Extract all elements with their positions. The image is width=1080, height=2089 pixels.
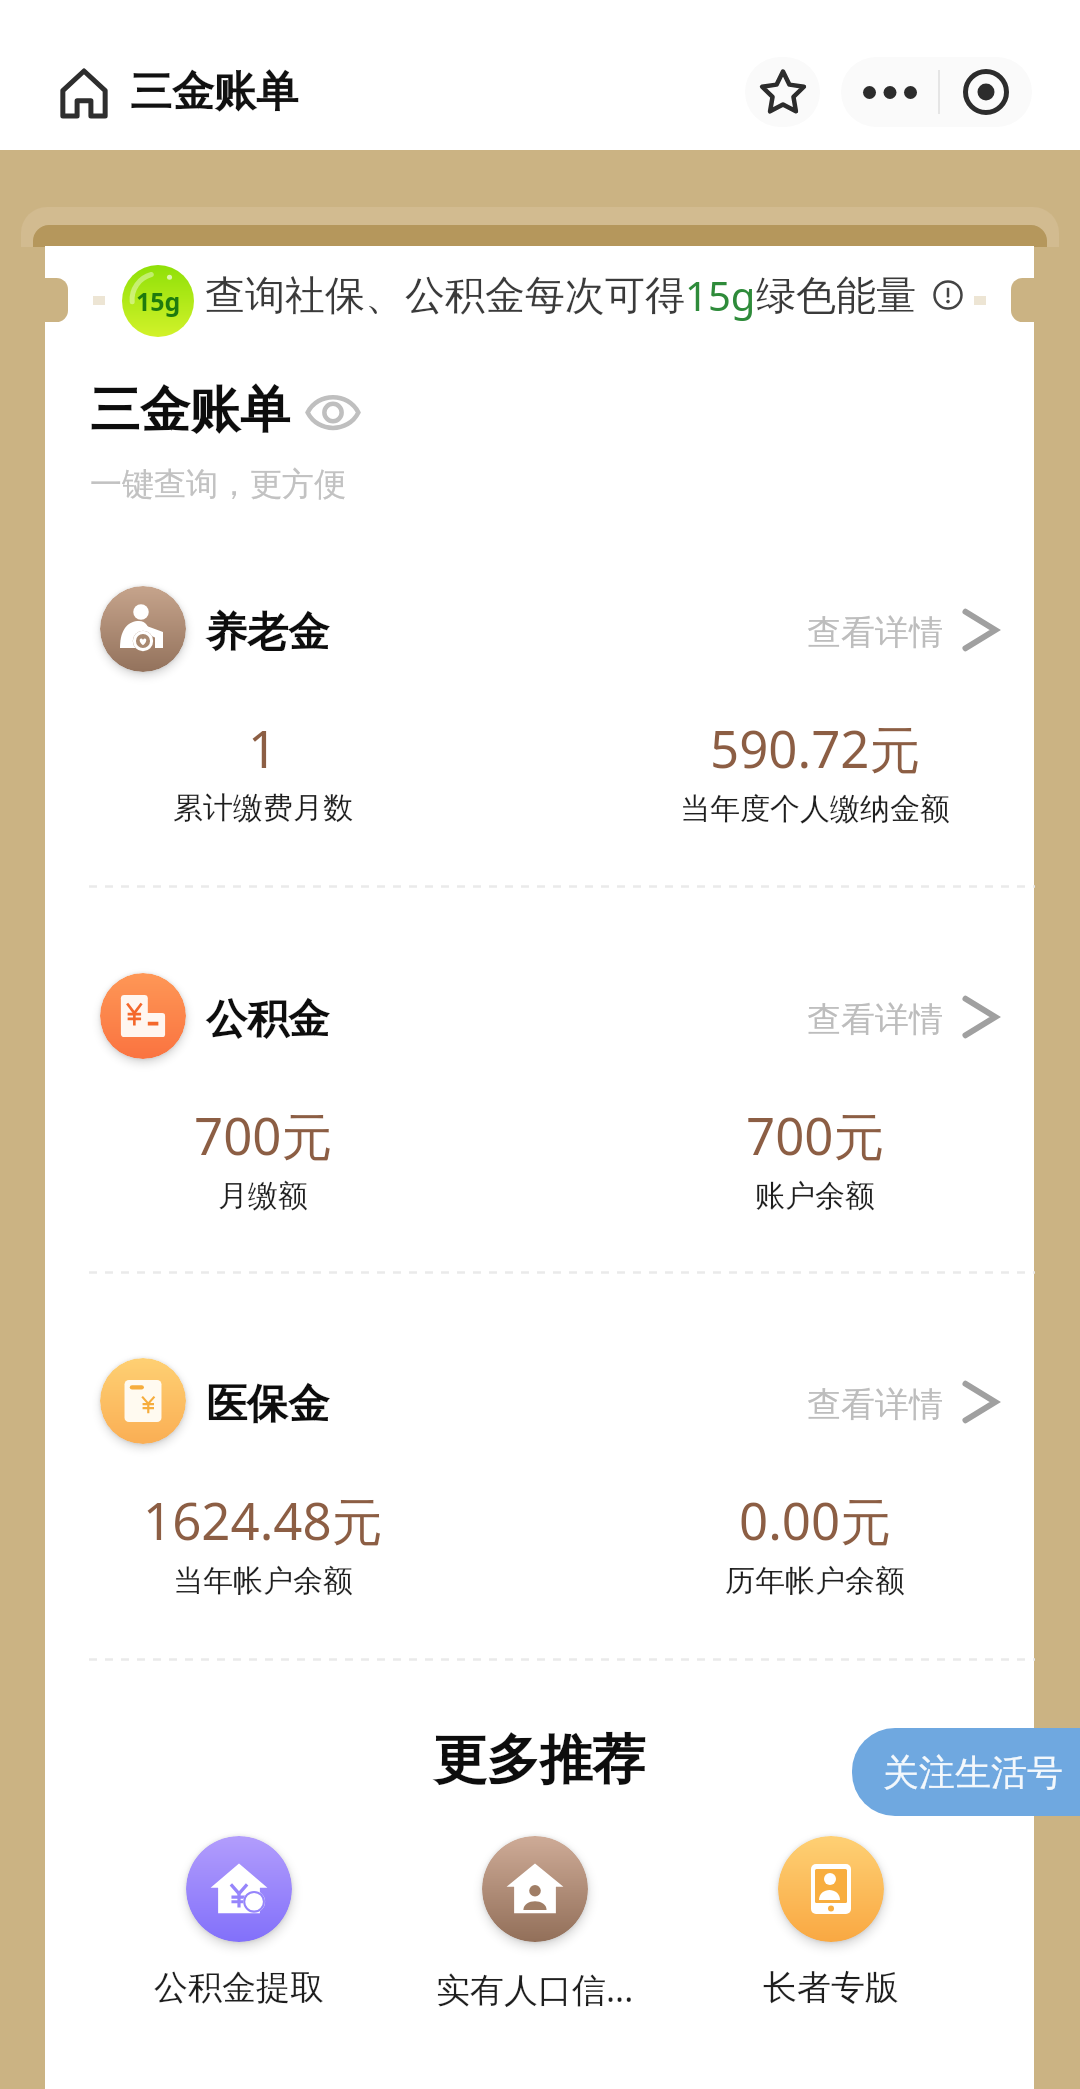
button[interactable]: Favorite — [745, 57, 820, 127]
button[interactable]: More options — [841, 57, 938, 127]
button[interactable]: 实有人口信... — [392, 1836, 678, 2012]
staticText: 15g — [685, 268, 756, 322]
staticText: 养老金 — [206, 607, 329, 659]
staticText: 查询社保、公积金每次可得 — [205, 270, 685, 320]
button[interactable]: 关注生活号 — [852, 1728, 1080, 1816]
staticText: 700元 — [746, 1100, 885, 1170]
staticText: 1624.48元 — [143, 1485, 383, 1555]
staticText: 查看详情 — [807, 998, 943, 1041]
staticText: 更多推荐 — [45, 1727, 1034, 1794]
staticText: 查看详情 — [807, 1383, 943, 1426]
button[interactable]: 公积金提取 — [96, 1836, 382, 2009]
staticText: 当年帐户余额 — [173, 1562, 353, 1600]
staticText: 15g — [136, 284, 181, 318]
staticText: 查看详情 — [807, 611, 943, 654]
button[interactable]: 养老金 — [45, 586, 1034, 672]
staticText: 月缴额 — [218, 1177, 308, 1215]
staticText: 公积金 — [206, 994, 329, 1046]
staticText: 实有人口信... — [436, 1966, 634, 2012]
button[interactable]: Toggle visibility — [300, 382, 366, 442]
staticText: 账户余额 — [755, 1177, 875, 1215]
staticText: 关注生活号 — [883, 1750, 1063, 1795]
button[interactable]: Close mini program — [940, 57, 1032, 127]
button[interactable]: 长者专版 — [688, 1836, 974, 2009]
staticText: 700元 — [194, 1100, 333, 1170]
staticText: 历年帐户余额 — [725, 1562, 905, 1600]
button[interactable]: 医保金 — [45, 1358, 1034, 1444]
staticText: 当年度个人缴纳金额 — [680, 790, 950, 828]
staticText: 公积金提取 — [154, 1966, 324, 2009]
button[interactable]: Home — [46, 55, 120, 129]
button[interactable]: 公积金 — [45, 973, 1034, 1059]
staticText: 长者专版 — [763, 1966, 899, 2009]
staticText: 绿色能量 — [756, 270, 916, 320]
staticText: 1 — [248, 713, 278, 782]
staticText: 累计缴费月数 — [173, 789, 353, 827]
staticText: 0.00元 — [739, 1485, 892, 1555]
staticText: 三金账单 — [130, 66, 298, 119]
staticText: 医保金 — [206, 1379, 329, 1431]
staticText: 一键查询，更方便 — [90, 464, 346, 504]
staticText: 三金账单 — [90, 379, 290, 442]
staticText: 590.72元 — [710, 713, 921, 783]
